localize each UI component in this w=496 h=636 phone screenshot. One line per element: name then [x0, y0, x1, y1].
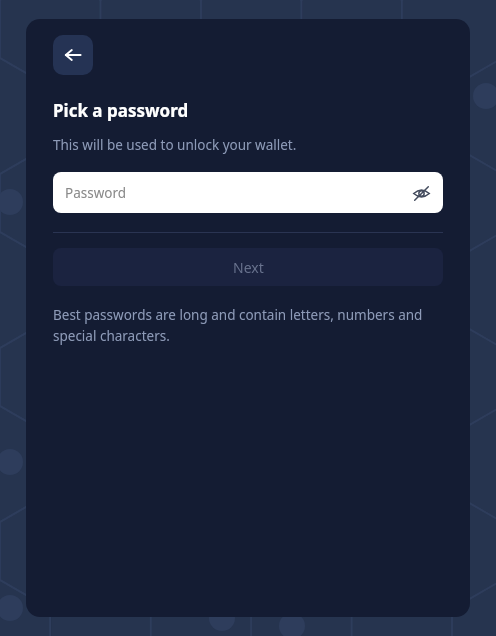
- staticText: Best passwords are long and contain lett…: [53, 306, 443, 345]
- staticText: This will be used to unlock your wallet.: [53, 136, 297, 154]
- button[interactable]: Password: [53, 172, 443, 213]
- staticText: Password: [65, 184, 127, 202]
- staticText: Pick a password: [53, 99, 189, 122]
- staticText: Next: [233, 258, 264, 277]
- button[interactable]: Show password: [407, 179, 435, 207]
- button[interactable]: Back: [53, 35, 93, 75]
- button[interactable]: Next: [53, 248, 443, 286]
